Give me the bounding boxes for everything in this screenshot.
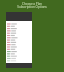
staticText: Subscription Options: [0, 5, 64, 9]
staticText: Choose a Plan: [0, 2, 64, 6]
